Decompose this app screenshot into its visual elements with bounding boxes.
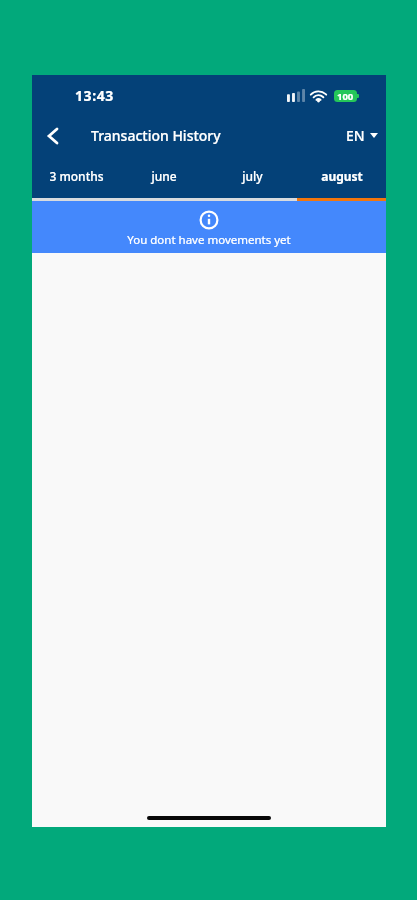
button[interactable]: EN (341, 120, 383, 151)
button[interactable]: july (208, 156, 297, 198)
staticText: 3 months (49, 168, 104, 184)
button[interactable]: Back (36, 119, 70, 153)
button[interactable]: You dont have movements yet (32, 201, 386, 253)
staticText: Transaction History (91, 126, 221, 145)
staticText: 100 (337, 90, 354, 102)
button[interactable]: june (120, 156, 208, 198)
staticText: EN (346, 126, 365, 145)
staticText: june (151, 168, 177, 184)
staticText: 13:43 (75, 86, 114, 105)
button[interactable]: 3 months (32, 156, 120, 198)
button[interactable]: august (297, 156, 386, 198)
staticText: july (242, 168, 263, 184)
staticText: You dont have movements yet (127, 232, 291, 248)
staticText: august (321, 168, 363, 184)
